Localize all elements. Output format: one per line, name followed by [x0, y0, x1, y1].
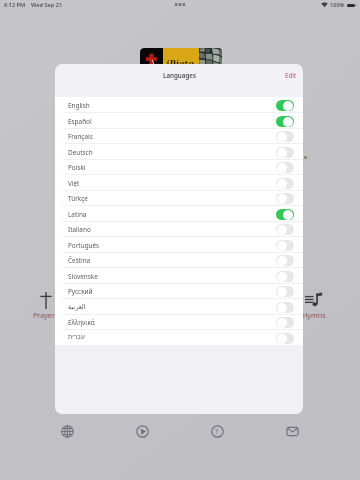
staticText: Languages	[163, 71, 196, 79]
button[interactable]: English on	[276, 100, 294, 111]
staticText: Español	[68, 117, 92, 126]
button[interactable]: Čeština	[55, 252, 303, 268]
button[interactable]: Web	[50, 419, 84, 443]
button[interactable]: Русский	[55, 283, 303, 299]
staticText: Việt	[68, 179, 80, 188]
staticText: Français	[68, 132, 93, 141]
button[interactable]: Italiano	[55, 221, 303, 237]
button[interactable]: Latina	[55, 206, 303, 222]
button[interactable]: Español on	[276, 116, 294, 127]
staticText: Čeština	[68, 256, 91, 265]
button[interactable]: iPieta banner	[140, 48, 222, 70]
staticText: Português	[68, 241, 100, 250]
button[interactable]: Hymns	[297, 292, 331, 320]
button[interactable]: Português off	[276, 240, 294, 251]
button[interactable]: Русский off	[276, 286, 294, 297]
button[interactable]: Polski	[55, 159, 303, 175]
button[interactable]: Deutsch	[55, 144, 303, 160]
button[interactable]: עברית off	[276, 333, 294, 344]
staticText: Slovenske	[68, 272, 98, 281]
button[interactable]: Multitasking controls	[170, 0, 190, 10]
button[interactable]: Türkçe	[55, 190, 303, 206]
staticText: Deutsch	[68, 148, 93, 157]
staticText: עברית	[68, 333, 85, 340]
button[interactable]: Português	[55, 237, 303, 253]
button[interactable]: Čeština off	[276, 255, 294, 266]
button[interactable]: Deutsch off	[276, 147, 294, 158]
button[interactable]: Slovenske	[55, 268, 303, 284]
button[interactable]: العربية off	[276, 302, 294, 313]
button[interactable]: Media	[125, 419, 159, 443]
button[interactable]: Italiano off	[276, 224, 294, 235]
staticText: العربية	[68, 303, 86, 310]
button[interactable]: Slovenske off	[276, 271, 294, 282]
button[interactable]: Mail	[275, 419, 309, 443]
button[interactable]: Latina on	[276, 209, 294, 220]
staticText: iPieta	[166, 57, 195, 70]
button[interactable]: العربية	[55, 299, 303, 315]
button[interactable]: Français off	[276, 131, 294, 142]
staticText: 100%	[330, 1, 345, 9]
button[interactable]: Edit	[279, 67, 303, 83]
staticText: English	[68, 101, 90, 110]
staticText: Türkçe	[68, 194, 88, 203]
button[interactable]: Ελληνικά	[55, 314, 303, 330]
staticText: Wed Sep 21	[31, 1, 63, 9]
button[interactable]: Türkçe off	[276, 193, 294, 204]
staticText: ?	[215, 426, 219, 436]
staticText: Русский	[68, 287, 93, 296]
staticText: 6:12 PM	[4, 1, 26, 9]
button[interactable]: Việt off	[276, 178, 294, 189]
staticText: Latina	[68, 210, 87, 219]
staticText: Hymns	[302, 310, 326, 320]
button[interactable]: Polski off	[276, 162, 294, 173]
staticText: Ελληνικά	[68, 318, 95, 327]
button[interactable]: Ελληνικά off	[276, 317, 294, 328]
button[interactable]: עברית	[55, 330, 303, 346]
button[interactable]: Việt	[55, 175, 303, 191]
staticText: Italiano	[68, 225, 91, 234]
staticText: Edit	[285, 71, 297, 79]
staticText: Polski	[68, 163, 86, 172]
button[interactable]: English	[55, 97, 303, 113]
button[interactable]: Français	[55, 128, 303, 144]
button[interactable]: Help	[200, 419, 234, 443]
button[interactable]: Prayer	[26, 290, 66, 320]
button[interactable]: Español	[55, 113, 303, 129]
staticText: Prayer	[33, 310, 55, 320]
